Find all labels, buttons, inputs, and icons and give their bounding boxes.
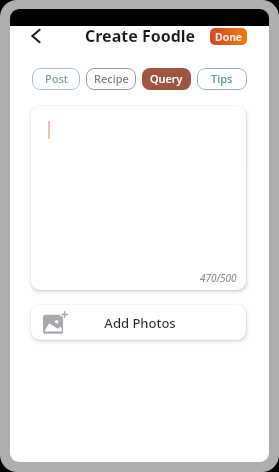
button[interactable]: Add Photos <box>31 305 246 340</box>
button[interactable]: Back <box>26 26 46 46</box>
button[interactable]: 470/500 <box>31 106 246 290</box>
staticText: Tips <box>211 71 233 86</box>
staticText: 470/500 <box>200 271 237 285</box>
button[interactable]: Query <box>142 68 191 90</box>
button[interactable]: Tips <box>197 68 247 90</box>
button[interactable]: Post <box>32 68 80 90</box>
staticText: Add Photos <box>104 314 176 332</box>
button[interactable]: Recipe <box>86 68 136 90</box>
staticText: Query <box>150 71 183 86</box>
staticText: Done <box>215 30 243 44</box>
button[interactable]: Done <box>210 28 247 45</box>
staticText: Recipe <box>94 71 129 86</box>
staticText: Create Foodle <box>85 25 196 45</box>
staticText: Post <box>45 71 68 86</box>
